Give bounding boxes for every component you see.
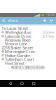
staticText: Mornington Cres: [5, 49, 35, 54]
staticText: TS Lucas Street: [1, 25, 27, 31]
staticText: Tottenham Court: [5, 57, 34, 62]
button[interactable]: Nearest 5 Stations shown: [11, 65, 45, 70]
staticText: 4.1 km: [43, 33, 55, 39]
staticText: eToro: [8, 18, 18, 23]
staticText: Kingsway Road: [5, 37, 30, 43]
staticText: Nearest 5 Stations shown: [11, 66, 45, 69]
button[interactable]: Hatton Garden: [0, 53, 56, 57]
button[interactable]: Wellington Ave: [0, 30, 56, 34]
staticText: ▂▄▆: [34, 13, 40, 16]
staticText: Fleet Street: [5, 60, 24, 66]
button[interactable]: Fleet Street: [0, 61, 56, 65]
button[interactable]: Recents: [32, 82, 35, 85]
staticText: Wellington Ave: [5, 30, 31, 35]
button[interactable]: Kingsway Road: [0, 38, 56, 42]
staticText: 2218 Baker Street: [1, 45, 32, 50]
staticText: Lakeside Drive: [5, 33, 31, 39]
button[interactable]: Back: [9, 82, 12, 85]
button[interactable]: Home: [21, 82, 23, 85]
staticText: Hatton Garden: [5, 53, 30, 58]
staticText: 14:09: [46, 13, 55, 17]
button[interactable]: Lakeside Drive: [0, 34, 56, 38]
button[interactable]: Mornington Cres: [0, 50, 56, 53]
staticText: 3.5 km: [43, 30, 55, 35]
staticText: Victoria Lane: [5, 41, 27, 46]
button[interactable]: Victoria Lane: [0, 42, 56, 46]
button[interactable]: Tottenham Court: [0, 57, 56, 61]
